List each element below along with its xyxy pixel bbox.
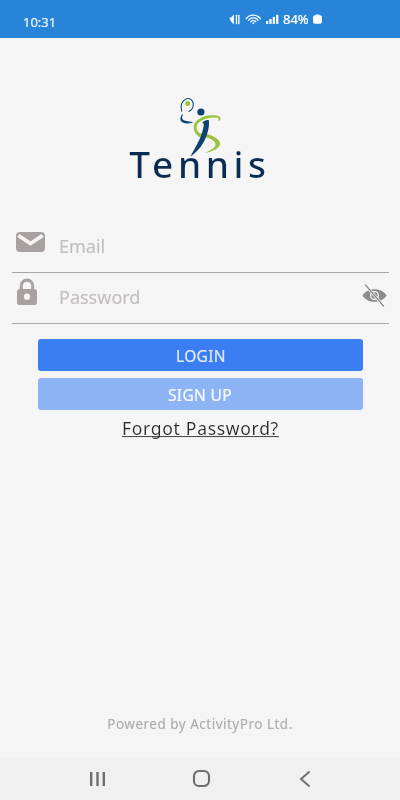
- button[interactable]: Show password: [360, 283, 388, 307]
- staticText: Powered by ActivityPro Ltd.: [0, 715, 400, 733]
- button[interactable]: Recent apps: [67, 757, 127, 800]
- button[interactable]: Home: [171, 757, 231, 800]
- button[interactable]: Back: [275, 757, 335, 800]
- staticText: 84%: [283, 10, 309, 28]
- button[interactable]: SIGN UP: [38, 378, 363, 410]
- staticText: Tennis: [0, 138, 400, 188]
- button[interactable]: Forgot Password?: [120, 416, 281, 440]
- staticText: 10:31: [23, 13, 57, 31]
- staticText: Email: [59, 234, 106, 259]
- staticText: SIGN UP: [168, 384, 233, 405]
- button[interactable]: LOGIN: [38, 339, 363, 371]
- staticText: LOGIN: [176, 345, 226, 366]
- staticText: Password: [59, 285, 141, 310]
